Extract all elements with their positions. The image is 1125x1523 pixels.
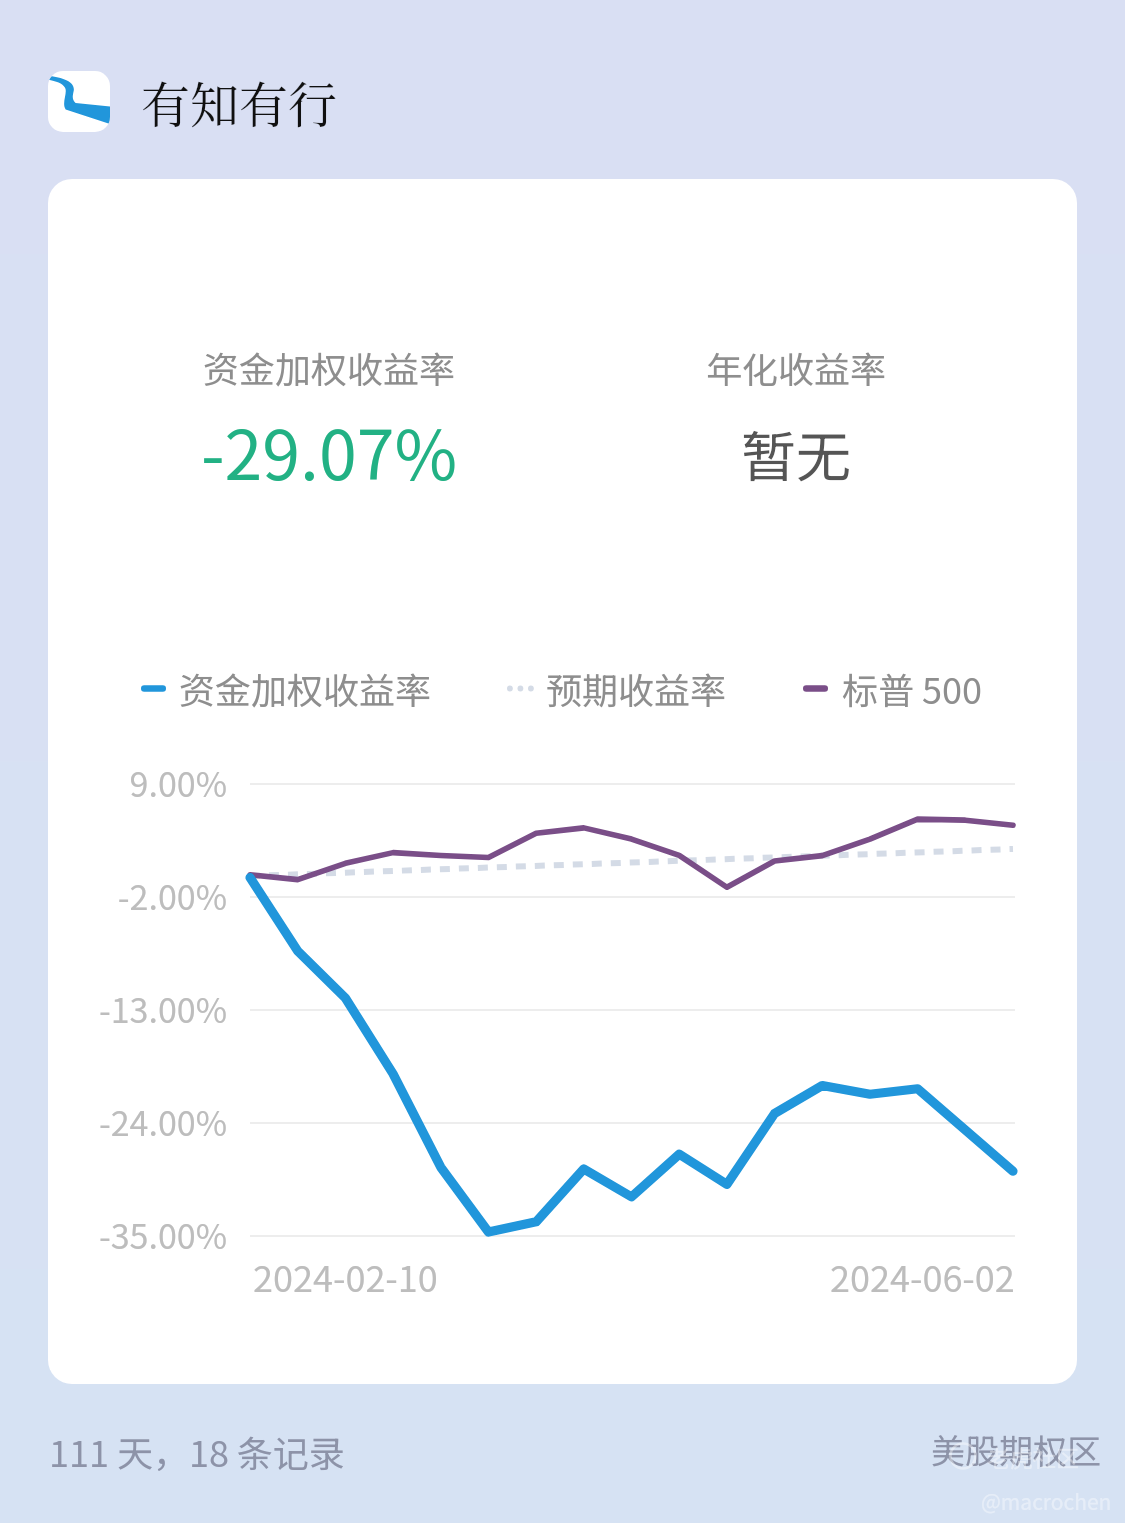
- staticText: 资金加权收益率: [179, 662, 432, 714]
- staticText: 2024-02-10: [253, 1250, 438, 1302]
- staticText: 2024-06-02: [830, 1250, 1015, 1302]
- staticText: 暂无: [741, 413, 852, 493]
- staticText: -13.00%: [48, 984, 227, 1033]
- staticText: 预期收益率: [546, 662, 727, 714]
- staticText: 美股期权区: [931, 1425, 1101, 1474]
- staticText: 有知有行: [141, 67, 338, 137]
- button[interactable]: App logo: [48, 71, 338, 141]
- staticText: 年化收益率: [706, 341, 887, 393]
- staticText: 9.00%: [48, 758, 227, 807]
- staticText: 资金加权收益率: [203, 341, 456, 393]
- staticText: -35.00%: [48, 1210, 227, 1259]
- button[interactable]: 美股期权区: [931, 1425, 1101, 1474]
- staticText: -24.00%: [48, 1097, 227, 1146]
- staticText: -29.07%: [201, 401, 458, 499]
- button[interactable]: 预期收益率: [507, 662, 727, 714]
- staticText: @macrochen: [981, 1486, 1112, 1516]
- staticText: 标普 500: [842, 662, 983, 714]
- button[interactable]: 资金加权收益率: [141, 662, 432, 714]
- staticText: 111 天，18 条记录: [49, 1425, 346, 1477]
- button[interactable]: 标普 500: [803, 662, 983, 714]
- other: App logo: [48, 71, 110, 132]
- staticText: -2.00%: [48, 871, 227, 920]
- button[interactable]: 111 天，18 条记录: [49, 1425, 346, 1477]
- staticText: 老虎社区: [987, 1440, 1079, 1473]
- button[interactable]: [48, 179, 1077, 1384]
